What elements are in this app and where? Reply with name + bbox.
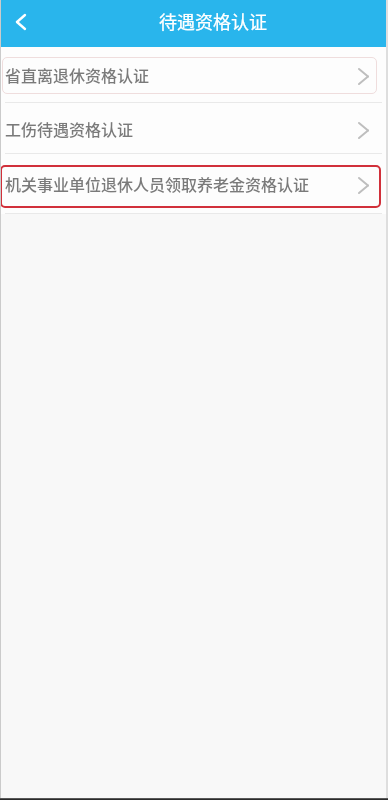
- staticText: 机关事业单位退休人员领取养老金资格认证: [5, 172, 310, 195]
- button[interactable]: 省直离退休资格认证: [0, 47, 388, 102]
- staticText: 省直离退休资格认证: [5, 63, 150, 86]
- staticText: 待遇资格认证: [159, 8, 267, 34]
- button[interactable]: 工伤待遇资格认证: [0, 103, 388, 153]
- button[interactable]: Back: [0, 0, 42, 47]
- staticText: 工伤待遇资格认证: [5, 117, 134, 140]
- button[interactable]: 机关事业单位退休人员领取养老金资格认证: [0, 154, 388, 213]
